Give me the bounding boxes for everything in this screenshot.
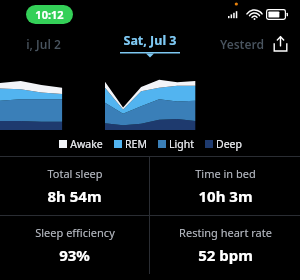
staticText: Awake: [70, 137, 103, 151]
staticText: Yesterd: [220, 36, 264, 52]
staticText: Sat, Jul 3: [123, 32, 177, 49]
staticText: Time in bed: [195, 166, 256, 181]
button[interactable]: Share: [268, 32, 292, 56]
button[interactable]: i, Jul 2: [20, 32, 67, 56]
staticText: 52 bpm: [198, 245, 253, 265]
button[interactable]: Sat, Jul 3: [120, 32, 180, 58]
staticText: i, Jul 2: [26, 36, 61, 52]
staticText: REM: [125, 137, 147, 151]
button[interactable]: Total sleep: [0, 157, 149, 215]
button[interactable]: Time in bed: [150, 157, 300, 215]
staticText: 10h 3m: [198, 186, 253, 206]
button[interactable]: Yesterd: [214, 32, 270, 56]
staticText: 93%: [59, 245, 90, 265]
button[interactable]: Sleep efficiency: [0, 216, 149, 274]
staticText: 10:12: [35, 7, 64, 22]
staticText: Light: [169, 137, 194, 151]
staticText: Sleep efficiency: [35, 225, 115, 240]
staticText: Deep: [216, 137, 242, 151]
staticText: Total sleep: [47, 166, 103, 181]
staticText: 8h 54m: [47, 186, 102, 206]
staticText: Resting heart rate: [179, 225, 272, 240]
button[interactable]: Resting heart rate: [150, 216, 300, 274]
